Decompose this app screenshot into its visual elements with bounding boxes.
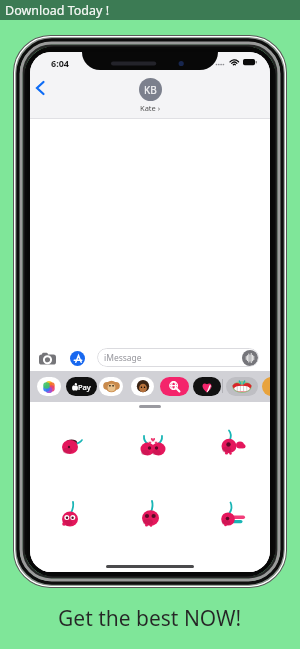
button[interactable]: App: [226, 377, 258, 396]
button[interactable]: Camera: [39, 352, 56, 366]
button[interactable]: KB: [139, 78, 162, 113]
staticText: KB: [144, 83, 157, 97]
button[interactable]: Cherry sticker: [218, 501, 258, 541]
button[interactable]: App: [131, 377, 154, 396]
button[interactable]: App: [160, 377, 189, 396]
button[interactable]: Cherry sticker: [56, 434, 96, 474]
button[interactable]: iMessage: [97, 348, 259, 367]
button[interactable]: App: [37, 377, 61, 396]
staticText: 6:04: [51, 57, 69, 69]
button[interactable]: App: [99, 377, 123, 396]
button[interactable]: App: [262, 377, 270, 396]
staticText: Pay: [78, 382, 91, 392]
button[interactable]: Audio message: [242, 350, 258, 366]
button[interactable]: Cherry sticker: [57, 501, 97, 541]
staticText: Kate ›: [140, 103, 161, 113]
staticText: iMessage: [104, 352, 142, 364]
button[interactable]: App Store: [70, 351, 85, 366]
button[interactable]: Back: [32, 78, 52, 98]
staticText: Get the best NOW!: [58, 604, 242, 633]
button[interactable]: Cherry sticker: [137, 500, 177, 540]
button[interactable]: Cherry sticker: [217, 430, 257, 470]
button[interactable]: App: [193, 377, 221, 396]
button[interactable]: App: [66, 377, 97, 396]
button[interactable]: Cherry sticker: [135, 434, 175, 474]
button[interactable]: Download Today !: [0, 0, 300, 20]
staticText: Download Today !: [5, 2, 110, 19]
